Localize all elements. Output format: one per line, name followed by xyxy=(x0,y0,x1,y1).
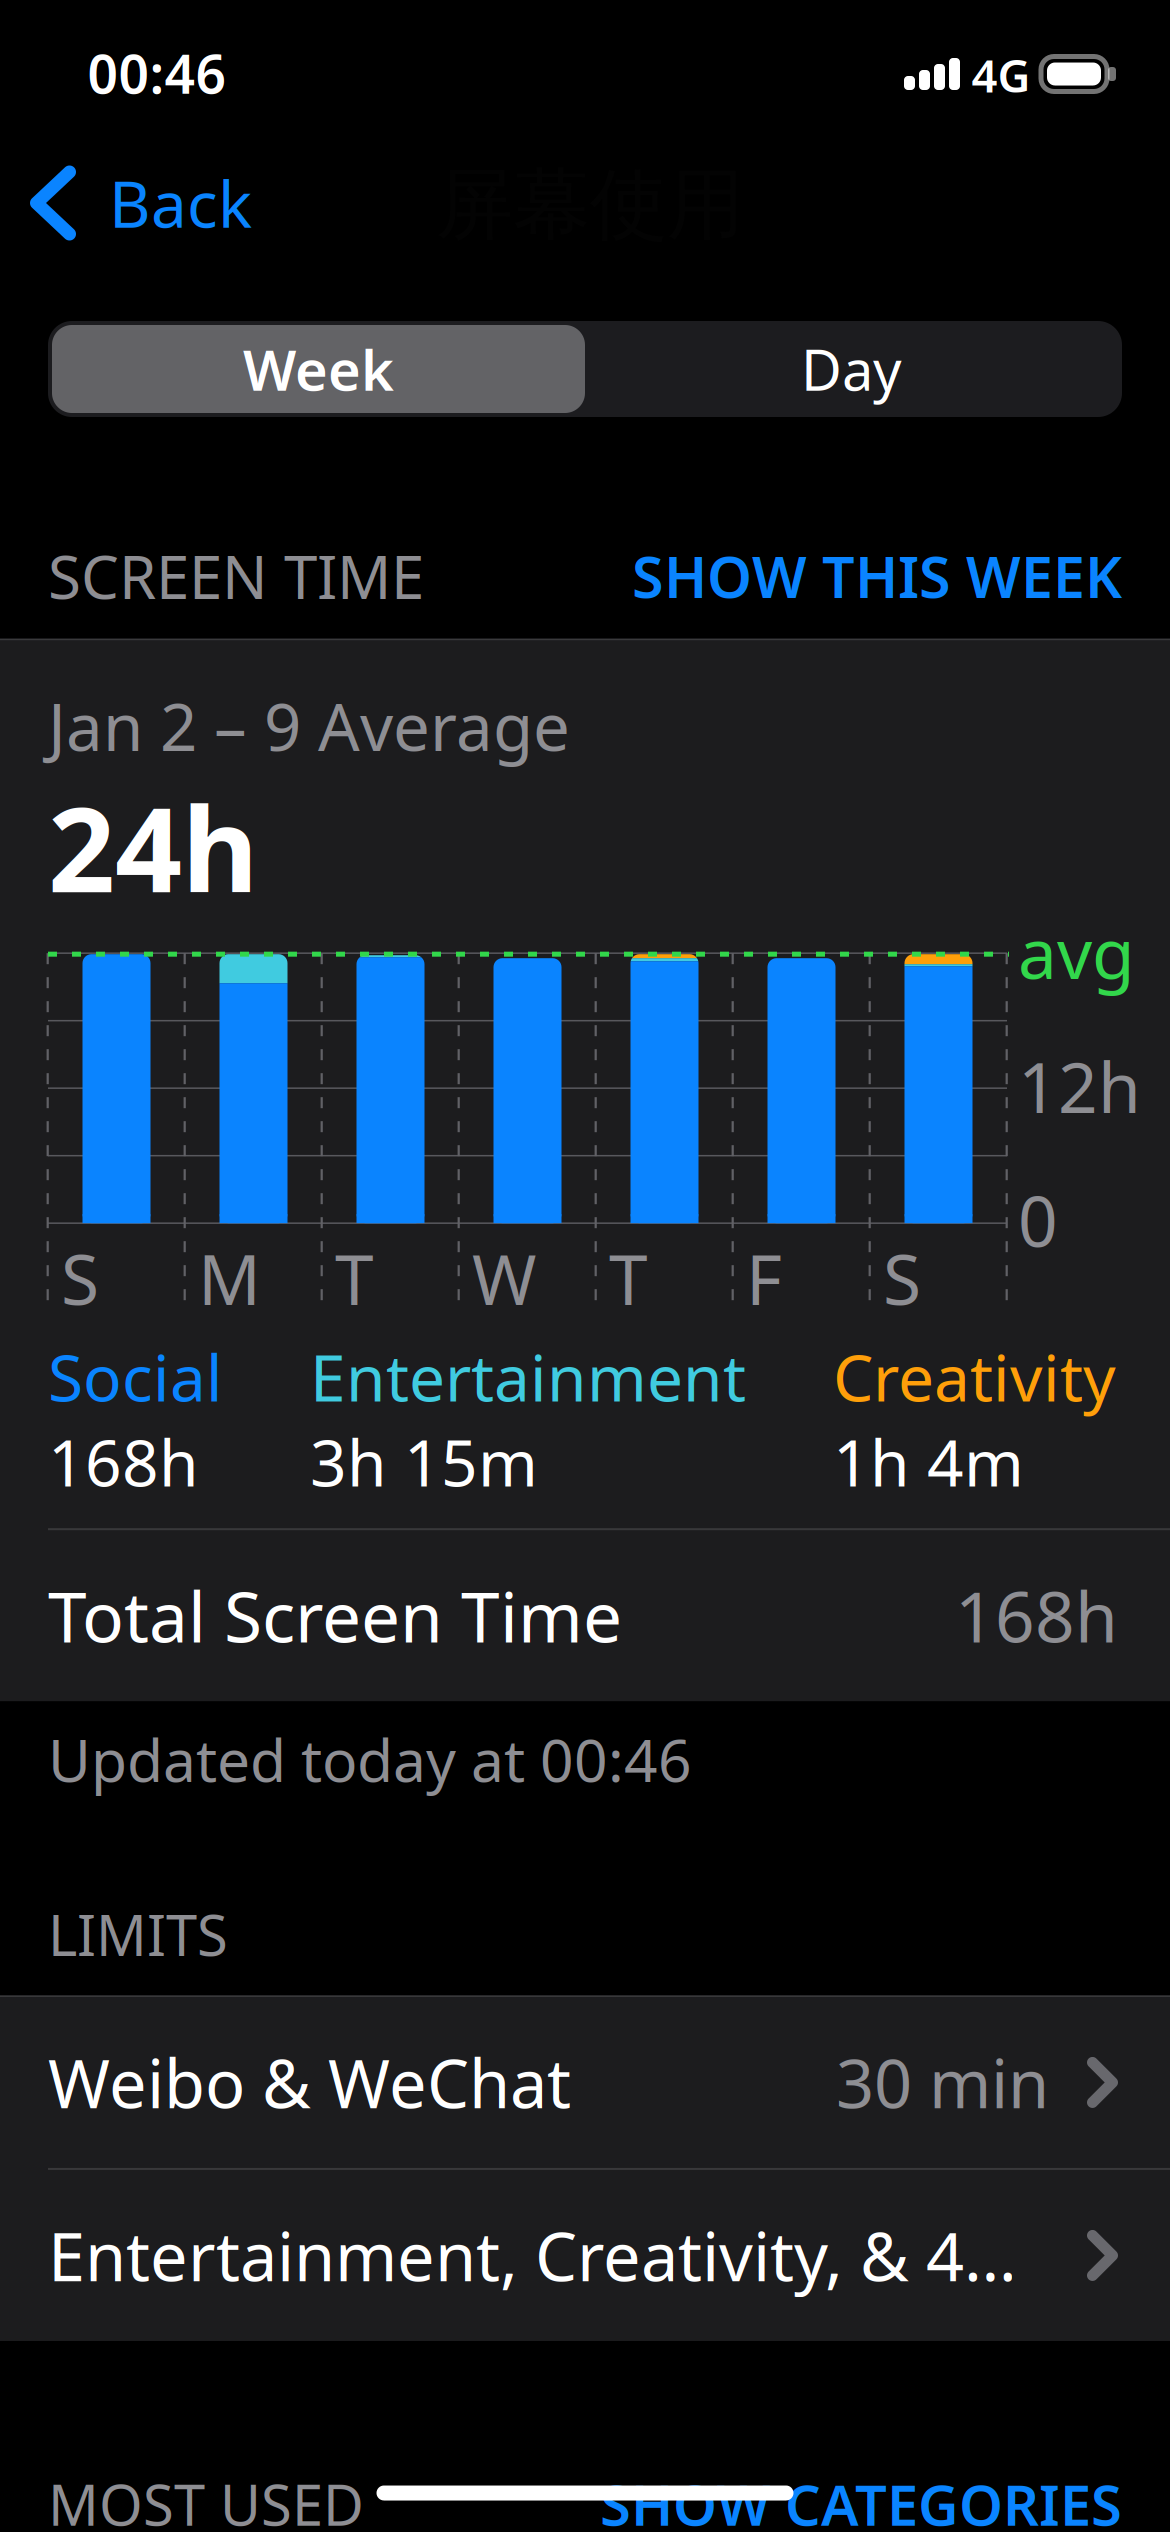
staticText: Weibo & WeChat xyxy=(48,2038,571,2127)
staticText: Total Screen Time xyxy=(48,1570,622,1662)
button[interactable]: Weibo & WeChat xyxy=(0,1997,1170,2168)
staticText: 0 xyxy=(1018,1174,1058,1266)
staticText: 24h xyxy=(48,769,258,925)
staticText: S xyxy=(883,1232,921,1324)
staticText: Entertainment, Creativity, & 4… xyxy=(48,2211,1017,2300)
staticText: T xyxy=(609,1232,648,1324)
staticText: SCREEN TIME xyxy=(48,536,424,616)
button[interactable]: SHOW THIS WEEK xyxy=(632,538,1122,614)
staticText: 00:46 xyxy=(87,38,226,108)
staticText: 1h 4m xyxy=(833,1419,1024,1504)
staticText: SHOW THIS WEEK xyxy=(632,538,1122,614)
button[interactable]: Back xyxy=(0,147,276,259)
staticText: 30 min xyxy=(836,2038,1049,2127)
staticText: Entertainment xyxy=(310,1334,746,1419)
button[interactable]: Week xyxy=(52,325,585,413)
staticText: Back xyxy=(109,160,252,245)
staticText: 4G xyxy=(971,45,1030,105)
staticText: Social xyxy=(48,1334,223,1419)
staticText: Updated today at 00:46 xyxy=(48,1720,692,1798)
staticText: MOST USED xyxy=(48,2467,364,2532)
staticText: S xyxy=(61,1232,99,1324)
button[interactable]: Day xyxy=(585,325,1118,413)
staticText: T xyxy=(335,1232,374,1324)
staticText: LIMITS xyxy=(48,1897,228,1971)
staticText: avg xyxy=(1018,906,1135,998)
staticText: M xyxy=(198,1232,261,1324)
staticText: Jan 2 – 9 Average xyxy=(48,682,570,769)
staticText: Day xyxy=(801,332,902,406)
staticText: 12h xyxy=(1018,1040,1141,1132)
staticText: 3h 15m xyxy=(310,1419,538,1504)
staticText: Creativity xyxy=(833,1334,1116,1419)
staticText: F xyxy=(746,1232,782,1324)
staticText: Week xyxy=(243,332,394,406)
staticText: SHOW CATEGORIES xyxy=(600,2467,1122,2532)
staticText: 168h xyxy=(48,1419,199,1504)
staticText: 168h xyxy=(955,1570,1118,1662)
button[interactable]: Entertainment, Creativity, & 4… xyxy=(0,2170,1170,2341)
button[interactable]: SHOW CATEGORIES xyxy=(600,2467,1122,2532)
staticText: W xyxy=(472,1232,536,1324)
